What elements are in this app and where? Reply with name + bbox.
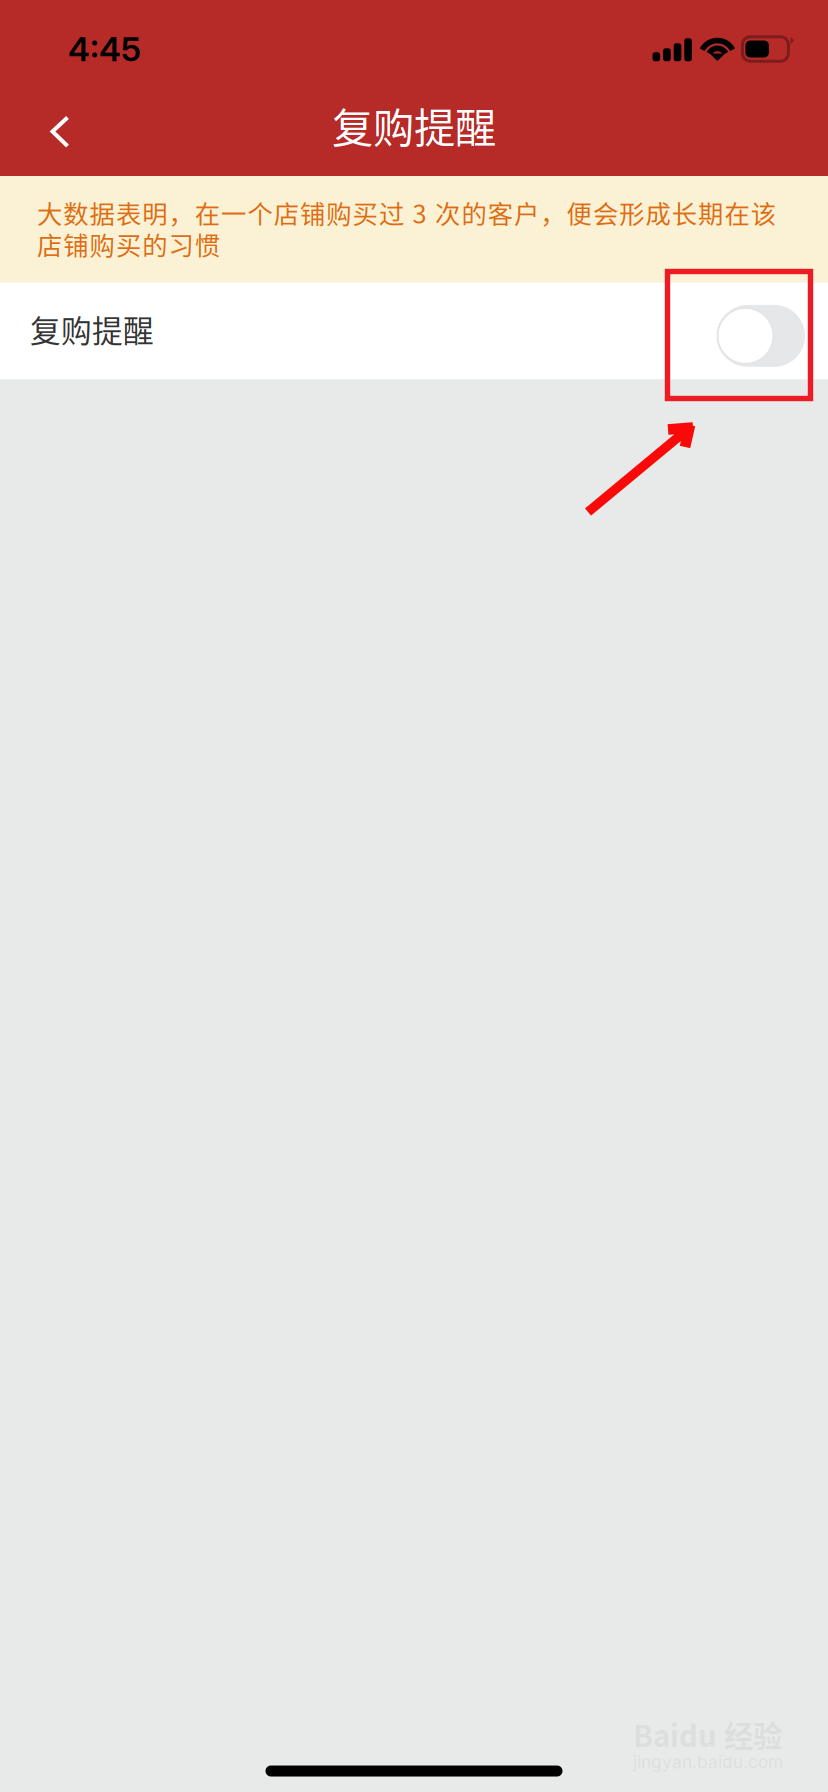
- button[interactable]: Back: [0, 88, 98, 176]
- staticText: Baidu 经验: [633, 1713, 782, 1755]
- staticText: 复购提醒: [30, 307, 154, 351]
- staticText: 复购提醒: [332, 95, 496, 155]
- button[interactable]: 复购提醒: [0, 282, 828, 379]
- staticText: jingyan.baidu.com: [633, 1751, 783, 1772]
- staticText: 大数据表明，在一个店铺购买过 3 次的客户，便会形成长期在该店铺购买的习惯: [37, 194, 776, 262]
- staticText: 4:45: [68, 29, 141, 69]
